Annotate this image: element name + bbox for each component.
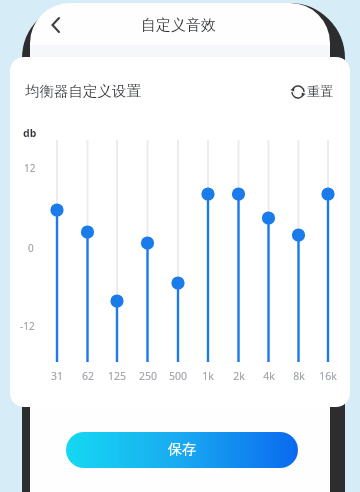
staticText: -12 [20,319,35,333]
staticText: 500 [162,369,194,387]
button[interactable]: 2k [223,369,255,387]
button[interactable]: 500 [162,369,194,387]
staticText: 2k [223,369,255,387]
staticText: 31 [41,369,73,387]
staticText: 0 [28,241,34,255]
button[interactable]: 16k [312,369,344,387]
button[interactable]: Back [44,10,74,40]
staticText: 8k [283,369,315,387]
button[interactable]: 250 [132,369,164,387]
button[interactable]: 保存 [66,432,298,468]
staticText: 重置 [307,83,333,99]
staticText: 保存 [168,441,196,459]
button[interactable]: 125 [101,369,133,387]
button[interactable]: 31 [41,369,73,387]
button[interactable]: 重置 [288,79,341,105]
button[interactable]: 1k [192,369,224,387]
staticText: 62 [72,369,104,387]
staticText: 16k [312,369,344,387]
staticText: 均衡器自定义设置 [25,82,141,100]
staticText: db [23,126,37,140]
button[interactable]: 4k [253,369,285,387]
button[interactable]: 8k [283,369,315,387]
staticText: 4k [253,369,285,387]
staticText: 12 [24,161,36,175]
staticText: 1k [192,369,224,387]
staticText: 125 [101,369,133,387]
button[interactable]: 62 [72,369,104,387]
staticText: 250 [132,369,164,387]
staticText: 自定义音效 [141,16,216,35]
